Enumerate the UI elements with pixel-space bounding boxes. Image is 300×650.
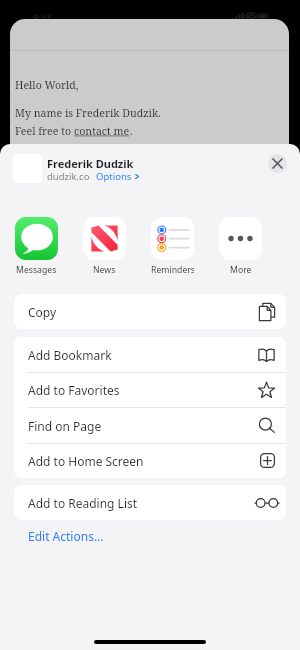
staticText: 9:41 [33,11,52,24]
button[interactable]: Edit Actions... [28,528,104,544]
button[interactable]: Messages [15,217,58,277]
button[interactable]: Add to Home Screen [14,443,286,478]
button[interactable]: Add Bookmark [14,337,286,372]
button[interactable]: More [219,217,262,277]
staticText: . [130,124,133,138]
staticText: Messages [16,264,57,276]
staticText: Reminders [151,264,194,276]
staticText: My name is Frederik Dudzik. [15,106,161,120]
staticText: Options [96,170,132,183]
staticText: More [230,264,252,276]
staticText: Add to Home Screen [28,453,144,469]
staticText: Hello World, [15,78,79,92]
button[interactable]: Options [96,170,139,183]
staticText: Edit Actions... [28,528,104,544]
staticText: dudzik.co [47,170,90,183]
staticText: Frederik Dudzik [47,156,134,171]
button[interactable]: Add to Reading List [14,485,286,520]
staticText: Add to Favorites [28,382,120,398]
staticText: Copy [28,304,57,320]
staticText: Add Bookmark [28,347,112,363]
button[interactable]: Add to Favorites [14,372,286,407]
button[interactable]: News [83,217,126,277]
button[interactable]: Find on Page [14,408,286,443]
staticText: Add to Reading List [28,495,138,511]
staticText: contact me [74,124,130,138]
staticText: Feel free to [15,124,74,138]
button[interactable]: Copy [14,294,286,329]
button[interactable]: Reminders [151,217,194,277]
button[interactable]: Close [268,154,287,173]
staticText: News [93,264,116,276]
staticText: Find on Page [28,418,102,434]
